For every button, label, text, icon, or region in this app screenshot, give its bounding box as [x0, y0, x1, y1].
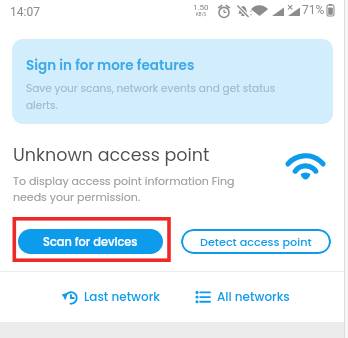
button[interactable]: All networks — [188, 281, 298, 312]
button[interactable]: Last network — [54, 281, 168, 312]
staticText: 71% — [302, 3, 325, 17]
staticText: Sign in for more features — [26, 56, 195, 75]
staticText: Unknown access point — [13, 143, 210, 168]
staticText: Detect access point — [200, 234, 312, 250]
staticText: Scan for devices — [43, 234, 138, 250]
staticText: Last network — [84, 288, 160, 305]
staticText: KB/S — [196, 12, 207, 17]
button[interactable]: Detect access point — [181, 229, 331, 254]
staticText: Save your scans, network events and get … — [26, 81, 276, 113]
button[interactable]: Sign in for more features — [12, 39, 333, 124]
staticText: To display access point information Fing… — [13, 173, 235, 205]
staticText: 1.50 — [193, 3, 209, 12]
staticText: 14:07 — [10, 5, 40, 19]
staticText: All networks — [217, 288, 290, 305]
button[interactable]: Scan for devices — [18, 229, 163, 254]
